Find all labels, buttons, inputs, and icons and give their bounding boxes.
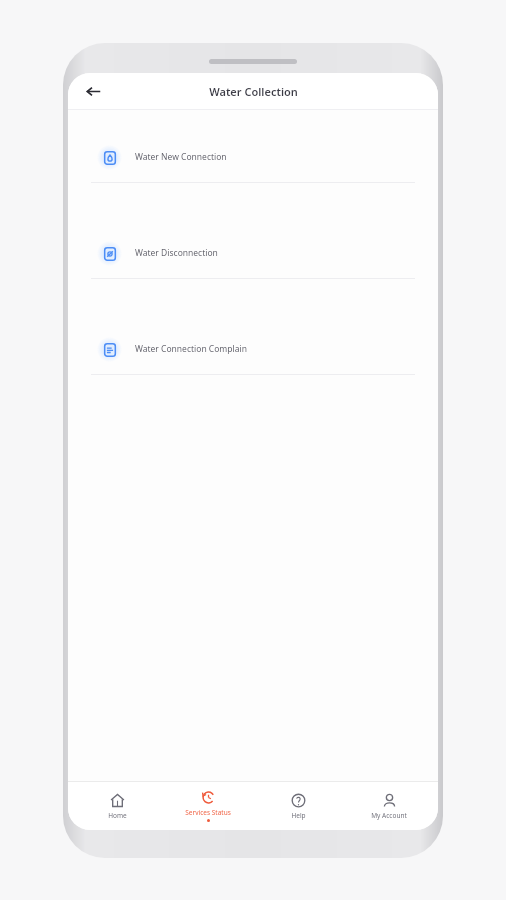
- staticText: Home: [108, 811, 127, 820]
- button[interactable]: Home: [76, 790, 158, 823]
- button[interactable]: Water New Connection: [68, 140, 438, 183]
- button[interactable]: Water Disconnection: [68, 236, 438, 279]
- staticText: Water Connection Complain: [135, 343, 247, 355]
- button[interactable]: Services Status: [167, 787, 249, 825]
- staticText: My Account: [371, 811, 407, 820]
- button[interactable]: Water Connection Complain: [68, 332, 438, 375]
- staticText: Help: [291, 811, 306, 820]
- button[interactable]: My Account: [348, 790, 430, 823]
- staticText: Water Disconnection: [135, 247, 218, 259]
- staticText: Water Collection: [209, 84, 298, 99]
- staticText: Water New Connection: [135, 151, 227, 163]
- button[interactable]: Help: [257, 790, 339, 823]
- button[interactable]: Back: [78, 76, 108, 106]
- staticText: Services Status: [185, 808, 231, 817]
